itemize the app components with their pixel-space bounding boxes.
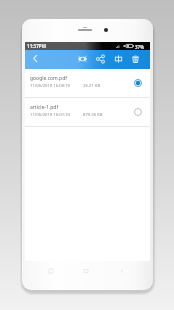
button[interactable]: Back [29,53,40,64]
button[interactable]: Not selected [132,106,144,118]
staticText: 36.21 KB [83,83,101,89]
staticText: 11:37PM [27,43,46,49]
staticText: 11/06/2018 16:00:19 [30,83,70,89]
staticText: 879.36 KB [83,112,103,118]
staticText: article-1.pdf [30,104,59,111]
button[interactable]: Home [80,265,91,276]
button[interactable]: article-1.pdf [25,98,150,126]
button[interactable]: Cast [112,52,125,65]
staticText: 11/06/2018 16:01:10 [30,112,70,118]
button[interactable]: Delete [129,52,142,65]
staticText: google.com.pdf [30,75,67,82]
button[interactable]: Recents [45,265,56,276]
button[interactable]: Selected [132,77,144,89]
button[interactable]: Share [94,52,107,65]
staticText: 37% [135,44,144,50]
button[interactable]: google.com.pdf [25,69,150,97]
button[interactable]: Preview [76,52,89,65]
